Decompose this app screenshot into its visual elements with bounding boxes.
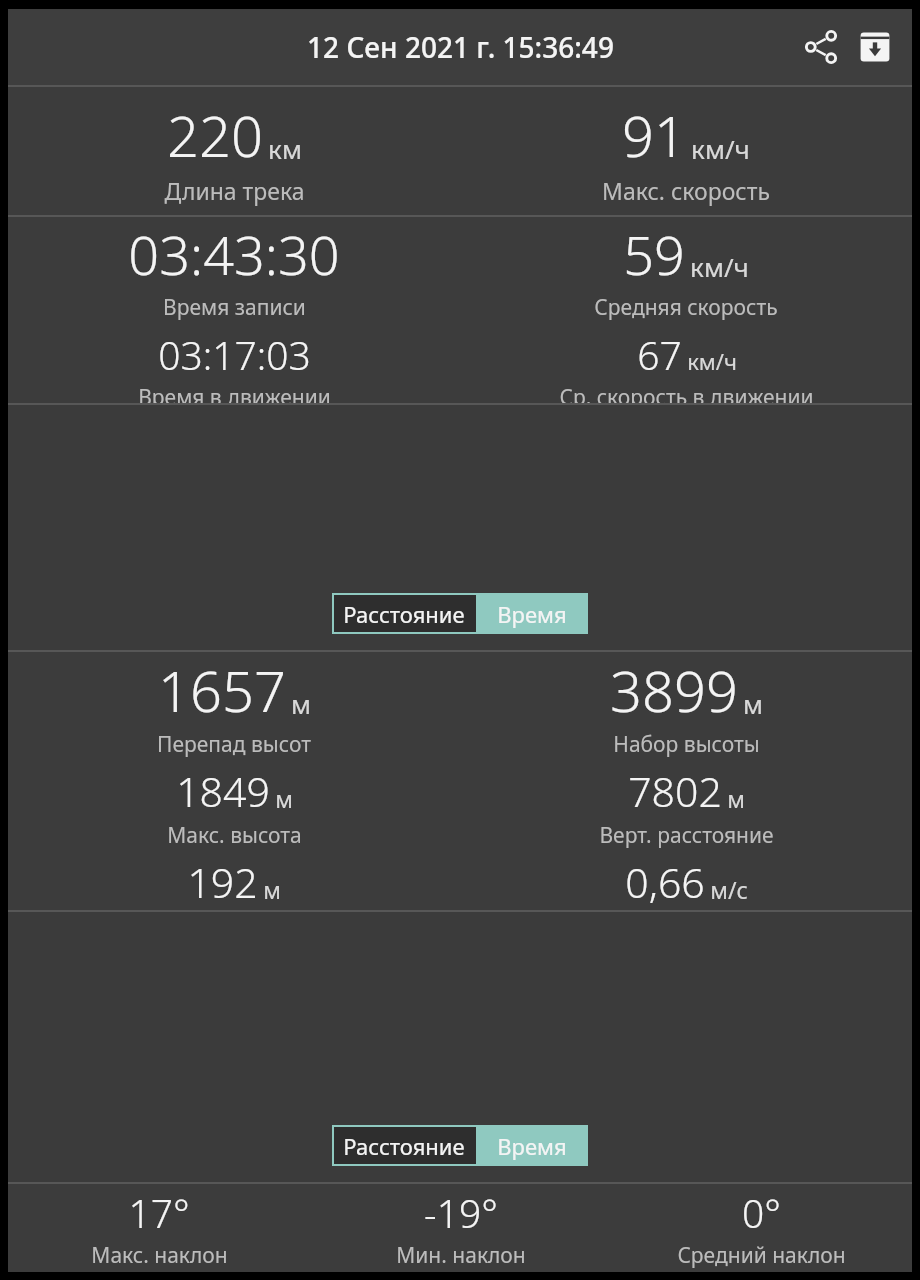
staticText: Средняя скорость <box>594 293 778 322</box>
staticText: 192 <box>187 854 258 910</box>
staticText: Макс. наклон <box>91 1241 228 1270</box>
button[interactable]: Расстояние <box>332 593 476 634</box>
staticText: 67 <box>637 328 682 381</box>
staticText: 0° <box>742 1186 781 1239</box>
staticText: 12 Сен 2021 г. 15:36:49 <box>307 28 614 66</box>
staticText: 3899 <box>610 652 738 728</box>
staticText: м <box>263 874 281 905</box>
button[interactable]: Расстояние <box>332 1125 476 1166</box>
staticText: м <box>275 783 293 814</box>
staticText: Макс. высота <box>167 821 302 850</box>
staticText: 0,66 <box>625 854 705 910</box>
button[interactable]: Время <box>476 1125 588 1166</box>
staticText: 7802 <box>628 763 722 819</box>
staticText: 1849 <box>176 763 270 819</box>
staticText: -19° <box>424 1186 498 1239</box>
button[interactable]: Save <box>850 22 900 72</box>
staticText: Ср. скорость в движении <box>559 383 814 403</box>
staticText: м <box>727 783 745 814</box>
staticText: 91 <box>622 97 686 173</box>
staticText: км <box>268 131 302 166</box>
staticText: Расстояние <box>343 1131 465 1161</box>
button[interactable]: Share <box>796 22 846 72</box>
staticText: м <box>291 686 311 721</box>
staticText: км/ч <box>691 131 750 166</box>
staticText: м <box>743 686 763 721</box>
staticText: 220 <box>167 97 263 173</box>
staticText: Время <box>497 1131 567 1161</box>
staticText: Макс. скорость <box>602 175 770 206</box>
staticText: Перепад высот <box>157 730 311 759</box>
staticText: 03:43:30 <box>128 217 340 291</box>
staticText: км/ч <box>690 249 749 284</box>
staticText: Время в движении <box>138 383 331 403</box>
staticText: Время <box>497 599 567 629</box>
staticText: м/с <box>710 874 748 905</box>
staticText: 17° <box>128 1186 190 1239</box>
staticText: Средний наклон <box>677 1241 846 1270</box>
button[interactable]: Время <box>476 593 588 634</box>
staticText: 03:17:03 <box>158 328 311 381</box>
staticText: Набор высоты <box>613 730 760 759</box>
staticText: Длина трека <box>164 175 305 206</box>
staticText: Верт. расстояние <box>599 821 774 850</box>
staticText: км/ч <box>687 346 737 376</box>
staticText: Мин. наклон <box>396 1241 526 1270</box>
staticText: 59 <box>623 217 685 291</box>
staticText: 1657 <box>158 652 286 728</box>
staticText: Время записи <box>163 293 306 322</box>
staticText: Расстояние <box>343 599 465 629</box>
